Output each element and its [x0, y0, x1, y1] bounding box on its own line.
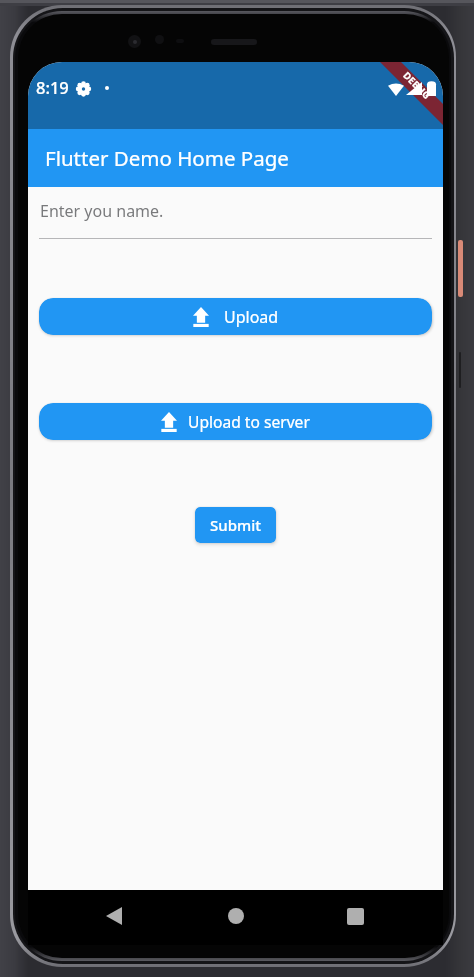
staticText: DEBUG: [400, 69, 434, 102]
staticText: 8:19: [36, 76, 69, 98]
staticText: Upload to server: [188, 411, 310, 432]
button[interactable]: Upload to server: [39, 403, 432, 440]
staticText: Submit: [210, 515, 261, 535]
button[interactable]: Recents: [331, 892, 379, 940]
staticText: Upload: [224, 306, 279, 328]
staticText: Enter you name.: [40, 200, 164, 222]
staticText: Flutter Demo Home Page: [45, 144, 289, 172]
button[interactable]: Home: [212, 892, 260, 940]
button[interactable]: Back: [90, 892, 138, 940]
button[interactable]: Submit: [195, 507, 276, 543]
button[interactable]: Upload: [39, 298, 432, 335]
